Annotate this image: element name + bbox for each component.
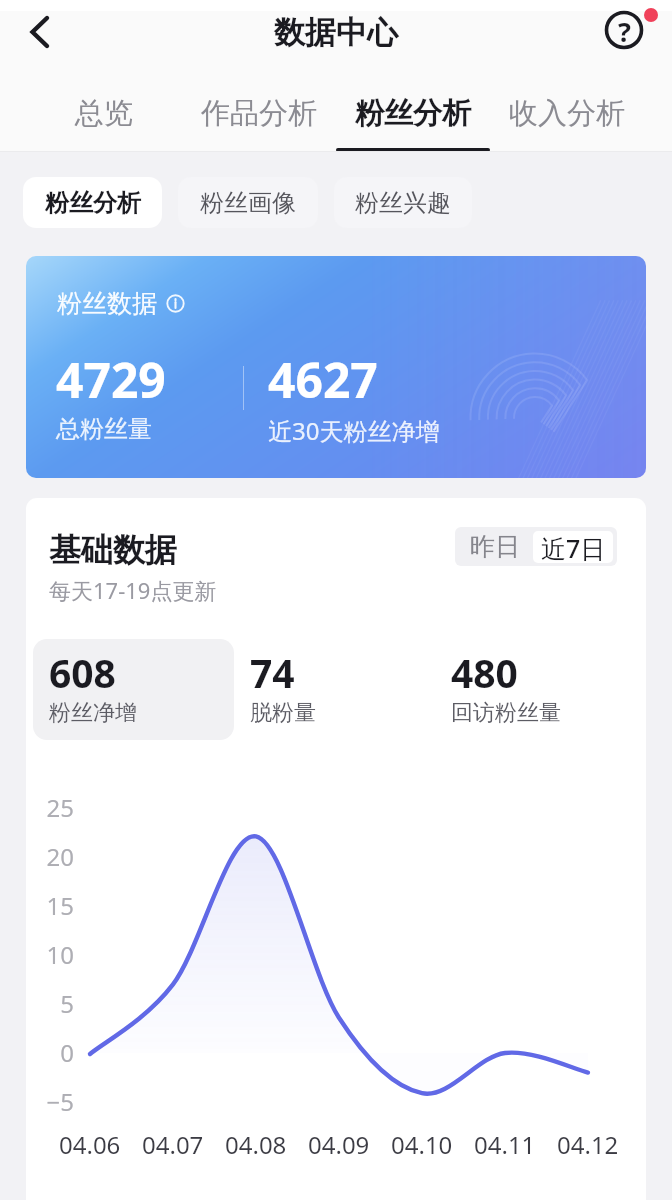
- staticText: 04.06: [59, 1128, 121, 1161]
- button[interactable]: 收入分析: [489, 64, 645, 152]
- staticText: 粉丝分析: [45, 188, 141, 218]
- button[interactable]: 总览: [56, 64, 152, 152]
- staticText: 480: [451, 646, 518, 699]
- staticText: 每天17-19点更新: [49, 575, 217, 605]
- staticText: 收入分析: [509, 95, 625, 132]
- staticText: 4627: [268, 347, 378, 412]
- staticText: 4729: [56, 347, 166, 412]
- button[interactable]: 粉丝数据: [26, 256, 646, 478]
- staticText: 近30天粉丝净增: [268, 414, 440, 447]
- staticText: 粉丝数据: [57, 288, 157, 319]
- staticText: 脱粉量: [250, 699, 316, 727]
- button[interactable]: 608: [33, 639, 234, 740]
- button[interactable]: 粉丝分析: [335, 64, 491, 152]
- staticText: 04.09: [308, 1128, 370, 1161]
- staticText: 数据中心: [274, 13, 398, 52]
- staticText: ?: [618, 13, 631, 50]
- button[interactable]: 粉丝画像: [178, 177, 318, 228]
- staticText: 粉丝兴趣: [355, 188, 451, 218]
- staticText: 10: [28, 938, 74, 971]
- staticText: 04.11: [474, 1128, 536, 1161]
- staticText: 作品分析: [201, 95, 317, 132]
- staticText: 总览: [75, 95, 133, 132]
- staticText: 20: [28, 840, 74, 873]
- button[interactable]: 74: [234, 639, 435, 740]
- button[interactable]: 粉丝分析: [23, 177, 162, 228]
- staticText: 04.08: [225, 1128, 287, 1161]
- button[interactable]: 480: [435, 639, 636, 740]
- button[interactable]: Back: [8, 0, 72, 64]
- staticText: 608: [49, 646, 116, 699]
- button[interactable]: 粉丝兴趣: [334, 177, 472, 228]
- button[interactable]: 作品分析: [181, 64, 337, 152]
- staticText: 04.07: [142, 1128, 204, 1161]
- button[interactable]: Help: [596, 0, 666, 64]
- staticText: 粉丝分析: [355, 95, 471, 132]
- staticText: 5: [28, 987, 74, 1020]
- staticText: 25: [28, 791, 74, 824]
- staticText: 昨日: [470, 531, 520, 562]
- staticText: 04.10: [391, 1128, 453, 1161]
- staticText: 0: [28, 1036, 74, 1069]
- staticText: 74: [250, 646, 295, 699]
- staticText: 总粉丝量: [56, 414, 152, 444]
- staticText: −5: [28, 1085, 74, 1118]
- staticText: 基础数据: [49, 530, 177, 570]
- staticText: 近7日: [541, 531, 606, 563]
- staticText: 粉丝净增: [49, 699, 137, 727]
- staticText: 04.12: [557, 1128, 619, 1161]
- button[interactable]: 近7日: [533, 531, 613, 563]
- button[interactable]: 昨日: [455, 527, 535, 566]
- staticText: 粉丝画像: [200, 188, 296, 218]
- staticText: 回访粉丝量: [451, 699, 561, 727]
- staticText: 15: [28, 889, 74, 922]
